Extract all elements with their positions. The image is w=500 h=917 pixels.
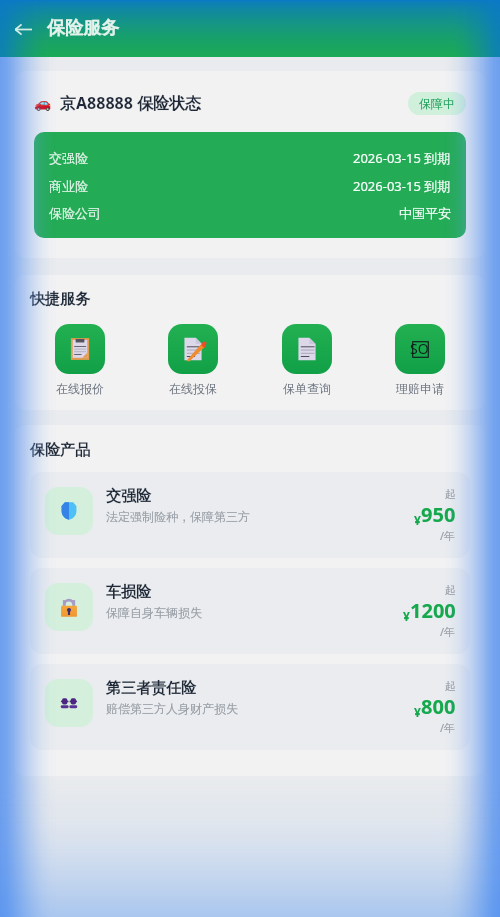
staticText: 🚗 bbox=[34, 95, 52, 111]
button[interactable]: 交强险 bbox=[30, 472, 470, 558]
staticText: 商业险 bbox=[49, 178, 88, 194]
staticText: /年 bbox=[440, 528, 456, 543]
button[interactable]: 在线报价 bbox=[30, 324, 130, 396]
staticText: 理赔申请 bbox=[396, 381, 444, 396]
staticText: 2026-03-15 到期 bbox=[353, 177, 451, 195]
staticText: 950 bbox=[421, 501, 456, 528]
staticText: 快捷服务 bbox=[30, 290, 90, 309]
staticText: 800 bbox=[421, 693, 456, 720]
staticText: 起 bbox=[445, 583, 456, 597]
button[interactable]: 在线投保 bbox=[143, 324, 243, 396]
staticText: 交强险 bbox=[49, 150, 88, 166]
staticText: 保险服务 bbox=[47, 17, 119, 40]
button[interactable]: Back bbox=[3, 9, 43, 49]
staticText: 在线报价 bbox=[56, 381, 104, 396]
button[interactable]: 车损险 bbox=[30, 568, 470, 654]
staticText: ¥ bbox=[403, 608, 410, 624]
staticText: 京A88888 保险状态 bbox=[60, 92, 201, 114]
staticText: 保障自身车辆损失 bbox=[106, 605, 202, 620]
staticText: 第三者责任险 bbox=[106, 679, 196, 698]
staticText: 2026-03-15 到期 bbox=[353, 149, 451, 167]
staticText: 起 bbox=[445, 679, 456, 693]
staticText: SOS bbox=[410, 339, 431, 360]
staticText: 保险产品 bbox=[30, 441, 90, 460]
staticText: 交强险 bbox=[106, 487, 151, 506]
button[interactable]: 保单查询 bbox=[257, 324, 357, 396]
staticText: 1200 bbox=[410, 597, 456, 624]
staticText: /年 bbox=[440, 720, 456, 735]
button[interactable]: 第三者责任险 bbox=[30, 664, 470, 750]
staticText: 赔偿第三方人身财产损失 bbox=[106, 701, 238, 716]
staticText: 在线投保 bbox=[169, 381, 217, 396]
staticText: 车损险 bbox=[106, 583, 151, 602]
staticText: ¥ bbox=[414, 512, 421, 528]
staticText: 保单查询 bbox=[283, 381, 331, 396]
staticText: 保险公司 bbox=[49, 205, 101, 221]
staticText: 中国平安 bbox=[399, 205, 451, 221]
staticText: 法定强制险种，保障第三方 bbox=[106, 509, 250, 524]
staticText: 起 bbox=[445, 487, 456, 501]
button[interactable]: 保障中 bbox=[408, 92, 466, 115]
staticText: 保障中 bbox=[419, 96, 455, 111]
staticText: /年 bbox=[440, 624, 456, 639]
button[interactable]: SOS bbox=[370, 324, 470, 396]
staticText: ¥ bbox=[414, 704, 421, 720]
